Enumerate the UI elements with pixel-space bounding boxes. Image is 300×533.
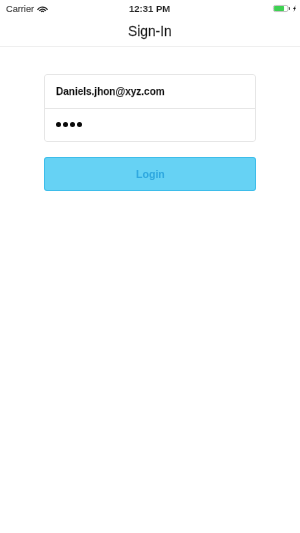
button[interactable] — [44, 109, 256, 142]
staticText: Carrier — [6, 4, 35, 14]
staticText: Sign-In — [128, 24, 172, 39]
button[interactable]: Login — [44, 157, 256, 191]
button[interactable]: Daniels.jhon@xyz.com — [44, 74, 256, 108]
staticText: Carrier — [6, 4, 35, 14]
staticText: Login — [136, 168, 165, 180]
staticText: Daniels.jhon@xyz.com — [56, 86, 165, 97]
staticText: 12:31 PM — [129, 3, 171, 14]
staticText: Daniels.jhon@xyz.com — [56, 86, 165, 97]
staticText: Sign-In — [128, 24, 172, 39]
staticText: 12:31 PM — [129, 3, 171, 14]
